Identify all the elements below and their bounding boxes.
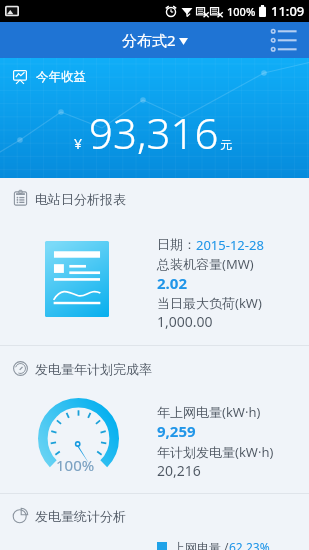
staticText: 2.02 bbox=[157, 273, 187, 293]
staticText: 年计划发电量(kW·h) bbox=[157, 443, 274, 461]
staticText: 发电量年计划完成率 bbox=[35, 361, 152, 377]
staticText: 发电量统计分析 bbox=[35, 508, 126, 524]
staticText: 1,000.00 bbox=[157, 312, 213, 331]
staticText: 分布式2 bbox=[122, 30, 176, 50]
button[interactable]: 分布式2 bbox=[116, 26, 194, 54]
staticText: 62.23% bbox=[229, 539, 270, 550]
staticText: 100% bbox=[227, 4, 256, 19]
staticText: 当日最大负荷(kW) bbox=[157, 294, 262, 312]
staticText: 2015-12-28 bbox=[196, 236, 264, 254]
button[interactable]: 发电量统计分析 bbox=[0, 502, 309, 529]
staticText: 9,259 bbox=[157, 421, 196, 441]
staticText: 20,216 bbox=[157, 461, 201, 480]
staticText: 11:09 bbox=[271, 2, 305, 20]
button[interactable]: 发电量年计划完成率 bbox=[0, 355, 309, 382]
staticText: 日期： bbox=[157, 236, 196, 252]
staticText: 元 bbox=[220, 137, 232, 152]
staticText: ¥ bbox=[74, 134, 83, 153]
staticText: 今年收益 bbox=[36, 69, 86, 85]
button[interactable]: 电站日分析报表 bbox=[0, 185, 309, 212]
staticText: 100% bbox=[56, 455, 95, 475]
button[interactable]: Menu bbox=[268, 24, 300, 56]
staticText: 年上网电量(kW·h) bbox=[157, 403, 261, 421]
staticText: 总装机容量(MW) bbox=[157, 255, 254, 273]
staticText: 上网电量 / bbox=[173, 539, 229, 550]
staticText: 电站日分析报表 bbox=[35, 191, 126, 207]
staticText: 93,316 bbox=[89, 104, 219, 161]
